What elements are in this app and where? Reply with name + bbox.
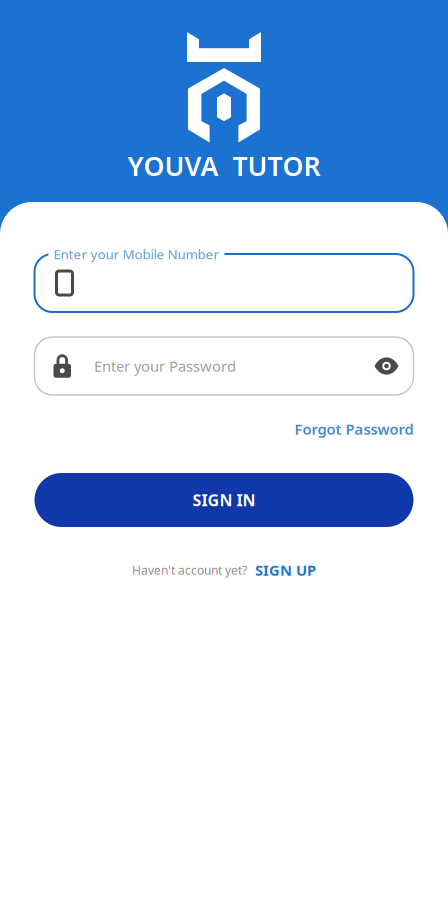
staticText: Enter your Password [94, 356, 236, 376]
button[interactable]: SIGN IN [34, 473, 413, 527]
staticText: Enter your Mobile Number [53, 245, 219, 263]
staticText: SIGN UP [255, 560, 316, 580]
button[interactable]: SIGN UP [255, 560, 316, 580]
staticText: Haven't account yet? [132, 562, 247, 578]
staticText: Forgot Password [294, 419, 413, 439]
button[interactable]: Forgot Password [294, 419, 413, 439]
staticText: SIGN IN [192, 489, 255, 511]
staticText: YOUVA TUTOR [127, 148, 320, 183]
